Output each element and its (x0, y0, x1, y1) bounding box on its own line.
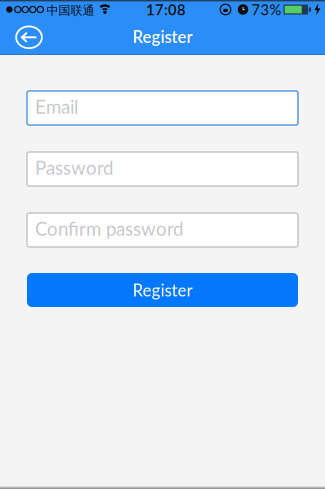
staticText: Email (35, 95, 78, 118)
staticText: 17:08 (146, 1, 186, 18)
button[interactable]: Email (27, 91, 298, 125)
button[interactable]: Password (27, 152, 298, 186)
staticText: Register (132, 280, 192, 300)
staticText: Confirm password (35, 217, 183, 240)
staticText: 中国联通 (46, 3, 94, 18)
staticText: 73% (251, 1, 281, 18)
button[interactable]: Back (0, 17, 50, 54)
button[interactable]: Register (27, 273, 298, 307)
staticText: Password (35, 156, 113, 179)
button[interactable]: Confirm password (27, 213, 298, 247)
staticText: Register (132, 26, 192, 46)
